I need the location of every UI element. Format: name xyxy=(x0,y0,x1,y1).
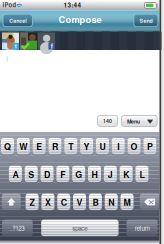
staticText: V xyxy=(77,196,83,208)
staticText: return xyxy=(135,224,150,232)
staticText: X xyxy=(45,196,51,208)
button[interactable]: Send xyxy=(134,14,158,27)
staticText: S xyxy=(28,168,34,181)
button[interactable]: Q xyxy=(1,138,14,154)
staticText: E xyxy=(36,140,42,153)
staticText: M xyxy=(123,196,130,208)
staticText: 13:44 xyxy=(63,0,81,9)
button[interactable]: Facebook account xyxy=(38,32,55,49)
staticText: P xyxy=(147,140,153,153)
staticText: G xyxy=(75,168,82,181)
button[interactable]: L xyxy=(135,166,148,182)
staticText: F xyxy=(60,168,65,181)
staticText: W xyxy=(19,140,27,153)
staticText: Cancel xyxy=(9,17,26,24)
staticText: N xyxy=(108,196,114,208)
button[interactable]: Delete xyxy=(140,194,159,210)
button[interactable]: U xyxy=(96,138,109,154)
button[interactable]: return xyxy=(127,220,158,236)
button[interactable]: S xyxy=(25,166,38,182)
button[interactable]: Z xyxy=(26,194,39,210)
staticText: Y xyxy=(84,140,90,153)
staticText: I xyxy=(117,140,119,153)
button[interactable]: Shift xyxy=(2,194,21,210)
button[interactable]: J xyxy=(104,166,117,182)
staticText: space xyxy=(72,224,87,232)
button[interactable]: Twitter account xyxy=(2,32,19,49)
staticText: Z xyxy=(30,196,35,208)
button[interactable]: T xyxy=(64,138,77,154)
staticText: R xyxy=(52,140,58,153)
button[interactable]: R xyxy=(48,138,61,154)
button[interactable]: B xyxy=(89,194,102,210)
staticText: J xyxy=(108,168,113,181)
button[interactable]: Account two xyxy=(20,32,37,49)
button[interactable]: V xyxy=(73,194,86,210)
staticText: D xyxy=(44,168,50,181)
staticText: H xyxy=(91,168,97,181)
staticText: iPod xyxy=(2,1,16,9)
staticText: U xyxy=(99,140,105,153)
staticText: C xyxy=(61,196,67,208)
button[interactable]: E xyxy=(33,138,46,154)
button[interactable]: F xyxy=(56,166,69,182)
button[interactable]: Cancel xyxy=(3,14,32,27)
button[interactable]: C xyxy=(57,194,70,210)
staticText: Compose xyxy=(58,12,101,26)
staticText: Send xyxy=(139,17,152,24)
staticText: K xyxy=(123,168,129,181)
button[interactable]: Y xyxy=(80,138,93,154)
staticText: f xyxy=(51,41,53,50)
staticText: t xyxy=(15,42,17,50)
staticText: A xyxy=(12,168,18,181)
button[interactable]: P xyxy=(143,138,156,154)
staticText: T xyxy=(68,140,73,153)
button[interactable]: D xyxy=(40,166,53,182)
button[interactable]: M xyxy=(120,194,133,210)
button[interactable]: W xyxy=(17,138,30,154)
button[interactable]: O xyxy=(128,138,141,154)
button[interactable]: N xyxy=(105,194,118,210)
staticText: 140 xyxy=(103,117,112,125)
staticText: L xyxy=(139,168,144,181)
button[interactable]: X xyxy=(41,194,54,210)
button[interactable]: K xyxy=(120,166,133,182)
staticText: B xyxy=(92,196,98,208)
button[interactable]: space xyxy=(41,220,118,236)
button[interactable]: .?123 xyxy=(2,220,33,236)
staticText: .?123 xyxy=(10,224,24,232)
button[interactable]: H xyxy=(88,166,101,182)
staticText: Menu xyxy=(127,117,140,125)
button[interactable]: A xyxy=(9,166,22,182)
button[interactable]: I xyxy=(112,138,125,154)
staticText: O xyxy=(131,140,138,153)
staticText: Q xyxy=(4,140,11,153)
button[interactable]: Menu xyxy=(122,115,157,126)
button[interactable]: G xyxy=(72,166,85,182)
